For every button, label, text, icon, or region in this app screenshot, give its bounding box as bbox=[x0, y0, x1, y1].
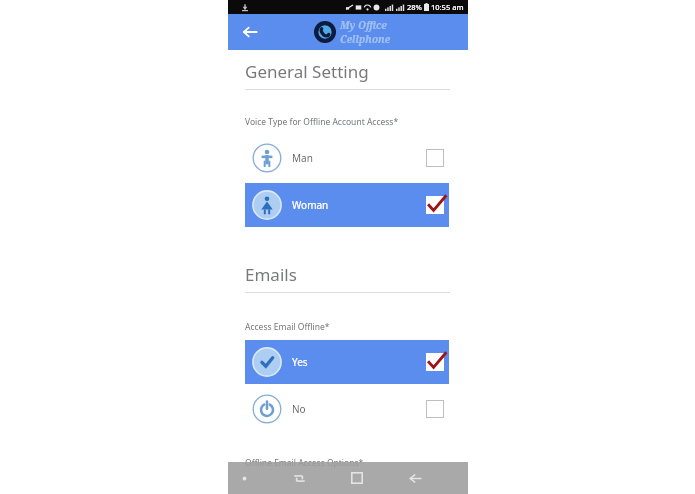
button[interactable]: Unchecked bbox=[425, 148, 445, 168]
button[interactable]: Checked bbox=[425, 352, 445, 372]
staticText: 28% bbox=[407, 2, 422, 12]
staticText: No bbox=[292, 402, 306, 416]
staticText: Cellphone bbox=[340, 32, 391, 46]
button[interactable]: Back bbox=[236, 18, 264, 46]
staticText: 10:55 am bbox=[431, 2, 464, 12]
staticText: Access Email Offline* bbox=[245, 321, 330, 333]
staticText: Man bbox=[292, 151, 313, 165]
button[interactable]: Yes bbox=[245, 340, 449, 384]
staticText: Yes bbox=[292, 355, 308, 369]
staticText: General Setting bbox=[245, 60, 369, 83]
staticText: Woman bbox=[292, 198, 329, 212]
button[interactable]: Unchecked bbox=[425, 399, 445, 419]
button[interactable]: Home bbox=[344, 465, 370, 491]
button[interactable]: No bbox=[245, 387, 449, 431]
staticText: My Office bbox=[340, 18, 387, 32]
button[interactable]: Menu bbox=[234, 468, 254, 488]
button[interactable]: Woman bbox=[245, 183, 449, 227]
button[interactable]: Recents bbox=[286, 465, 312, 491]
button[interactable]: Back bbox=[402, 465, 428, 491]
staticText: Offline Email Access Options* bbox=[245, 457, 364, 469]
button[interactable]: Man bbox=[245, 136, 449, 180]
staticText: Emails bbox=[245, 263, 297, 286]
button[interactable]: Checked bbox=[425, 195, 445, 215]
staticText: Voice Type for Offline Account Access* bbox=[245, 116, 399, 128]
